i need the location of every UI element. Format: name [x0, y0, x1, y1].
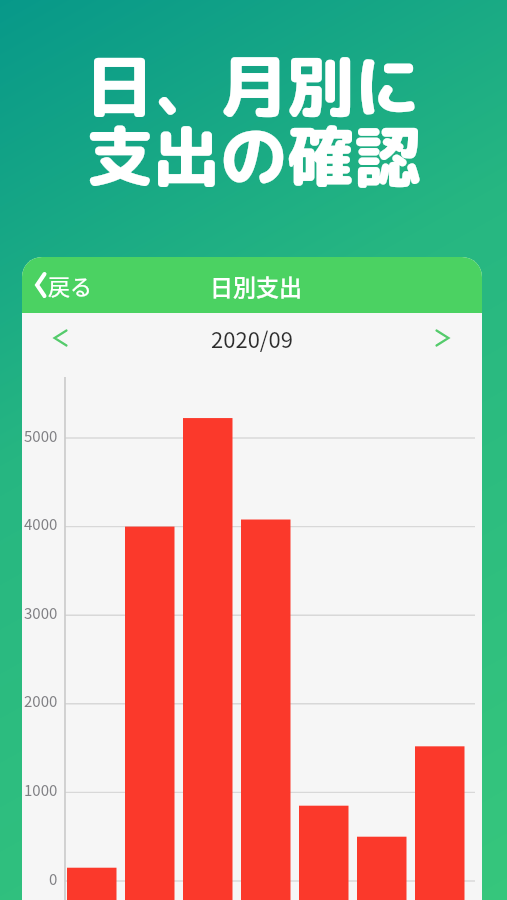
staticText: 3000 — [24, 602, 58, 620]
staticText: 2020/09 — [211, 322, 293, 354]
staticText: 4000 — [24, 513, 58, 531]
staticText: 1000 — [24, 779, 58, 797]
staticText: 0 — [49, 868, 58, 886]
staticText: 5000 — [24, 425, 58, 443]
staticText: 戻る — [48, 269, 93, 301]
button[interactable] — [52, 329, 69, 347]
button[interactable]: 戻る — [35, 269, 93, 301]
staticText: 2000 — [24, 690, 58, 708]
button[interactable] — [434, 329, 451, 347]
staticText: 日別支出 — [210, 269, 302, 302]
staticText: 日、月別に 支出の確認 — [0, 39, 507, 202]
